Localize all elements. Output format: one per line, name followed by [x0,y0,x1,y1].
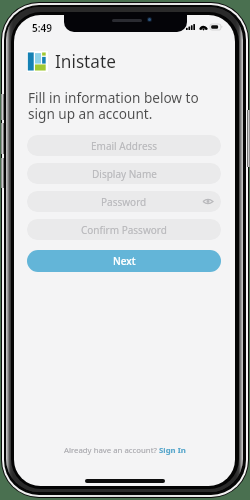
other: Show password [203,198,213,205]
staticText: Email Address [91,139,158,153]
button[interactable]: Next [27,250,221,272]
staticText: Display Name [92,167,157,181]
button[interactable]: Email Address [27,135,221,156]
button[interactable]: Password [27,191,221,212]
button[interactable]: Confirm Password [27,219,221,240]
button[interactable]: Display Name [27,163,221,184]
button[interactable]: Sign In [159,445,186,456]
staticText: Confirm Password [81,223,167,237]
staticText: Password [101,195,147,209]
staticText: Fill in information below to sign up an … [28,88,199,123]
staticText: Next [113,254,136,268]
staticText: Inistate [55,50,116,73]
staticText: Already have an account? [64,445,159,456]
staticText: 5:49 [32,21,52,35]
